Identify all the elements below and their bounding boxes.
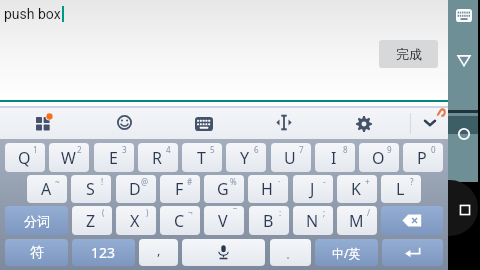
button[interactable]: J <box>293 175 333 203</box>
staticText: J <box>310 178 315 200</box>
staticText: 8 <box>343 144 348 155</box>
button[interactable]: Voice input <box>182 239 265 266</box>
staticText: N <box>306 210 319 232</box>
button[interactable]: Z <box>72 206 112 235</box>
button[interactable]: V <box>204 206 244 235</box>
button[interactable]: K <box>337 175 377 203</box>
staticText: F <box>175 178 184 200</box>
staticText: Y <box>240 147 250 169</box>
button[interactable]: Home <box>452 121 476 147</box>
staticText: 分词 <box>24 213 50 229</box>
button[interactable]: M <box>337 206 377 235</box>
staticText: 。 <box>286 249 295 260</box>
button[interactable]: 。 <box>270 239 311 266</box>
button[interactable]: S <box>71 175 111 203</box>
button[interactable]: L <box>381 175 421 203</box>
button[interactable]: Back <box>452 48 476 73</box>
staticText: E <box>109 147 118 169</box>
staticText: 完成 <box>396 46 422 62</box>
staticText: R <box>152 147 162 169</box>
staticText: M <box>349 210 364 232</box>
staticText: G <box>217 178 229 200</box>
button[interactable]: O <box>359 143 399 172</box>
staticText: 5 <box>210 144 215 155</box>
staticText: : <box>279 207 282 218</box>
staticText: B <box>263 210 274 232</box>
button[interactable]: Backspace <box>381 206 443 235</box>
button[interactable]: T <box>182 143 222 172</box>
staticText: ) <box>146 207 149 218</box>
staticText: 2 <box>77 144 82 155</box>
button[interactable]: W <box>49 143 89 172</box>
button[interactable]: Move cursor <box>265 108 303 139</box>
button[interactable]: X <box>116 206 156 235</box>
button[interactable]: 分词 <box>5 206 68 235</box>
staticText: A <box>41 178 52 200</box>
staticText: ¯ <box>233 207 237 218</box>
staticText: W <box>61 147 76 169</box>
staticText: V <box>218 210 228 232</box>
button[interactable]: Switch keyboard <box>451 3 477 28</box>
button[interactable]: Settings <box>345 108 383 139</box>
staticText: 1 <box>33 144 38 155</box>
button[interactable]: Apps <box>24 108 62 139</box>
staticText: 123 <box>91 243 116 262</box>
staticText: O <box>372 147 385 169</box>
staticText: 7 <box>299 144 304 155</box>
button[interactable]: Hide keyboard <box>411 108 449 139</box>
staticText: 0 <box>431 144 436 155</box>
staticText: ? <box>410 176 414 187</box>
button[interactable]: , <box>139 239 178 266</box>
staticText: % <box>230 176 237 187</box>
button[interactable]: R <box>138 143 178 172</box>
staticText: push box <box>4 6 61 22</box>
button[interactable]: I <box>315 143 355 172</box>
button[interactable]: D <box>116 175 156 203</box>
staticText: 中/英 <box>332 245 361 261</box>
button[interactable]: 123 <box>72 239 135 266</box>
staticText: Z <box>86 210 96 232</box>
button[interactable]: Q <box>5 143 45 172</box>
button[interactable]: A <box>27 175 67 203</box>
staticText: H <box>261 178 273 200</box>
staticText: D <box>129 178 141 200</box>
button[interactable]: P <box>403 143 443 172</box>
button[interactable]: 中/英 <box>315 239 378 266</box>
staticText: @ <box>141 176 149 187</box>
staticText: 6 <box>254 144 259 155</box>
button[interactable]: 符 <box>5 239 68 266</box>
staticText: K <box>351 178 361 200</box>
staticText: Q <box>18 147 31 169</box>
staticText: 3 <box>122 144 127 155</box>
button[interactable]: Y <box>226 143 266 172</box>
staticText: S <box>437 106 450 119</box>
staticText: S <box>86 178 95 200</box>
button[interactable]: 完成 <box>379 40 438 68</box>
staticText: T <box>197 147 206 169</box>
staticText: 符 <box>30 244 44 262</box>
button[interactable]: E <box>94 143 134 172</box>
staticText: + <box>365 176 370 187</box>
button[interactable]: B <box>249 206 289 235</box>
staticText: / <box>367 207 370 218</box>
button[interactable]: C <box>160 206 200 235</box>
button[interactable]: G <box>204 175 244 203</box>
staticText: C <box>174 210 185 232</box>
button[interactable]: Enter <box>382 239 443 266</box>
button[interactable]: Recents <box>454 198 476 222</box>
staticText: L <box>396 178 405 200</box>
staticText: 9 <box>387 144 392 155</box>
button[interactable]: Keyboard layout <box>185 108 223 139</box>
staticText: , <box>157 241 161 259</box>
staticText: # <box>187 176 193 187</box>
button[interactable]: N <box>293 206 333 235</box>
staticText: ( <box>102 207 105 218</box>
button[interactable]: H <box>248 175 288 203</box>
staticText: P <box>417 147 427 169</box>
button[interactable]: U <box>271 143 311 172</box>
button[interactable]: Emoji <box>105 108 143 139</box>
staticText: U <box>284 147 296 169</box>
button[interactable]: F <box>160 175 200 203</box>
staticText: ¬ <box>188 207 193 218</box>
staticText: X <box>130 210 140 232</box>
